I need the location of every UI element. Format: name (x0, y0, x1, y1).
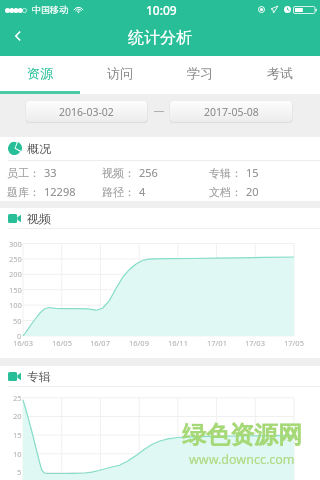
button[interactable]: Back (0, 20, 36, 56)
staticText: 2017-05-08 (204, 105, 259, 119)
button[interactable]: 访问 (80, 56, 160, 94)
button[interactable]: 2017-05-08 (170, 101, 292, 122)
staticText: 20 (246, 184, 259, 199)
staticText: 资源 (27, 65, 53, 81)
staticText: 4 (139, 184, 146, 199)
staticText: 路径： (102, 185, 135, 199)
staticText: www.downcc.com (189, 451, 295, 468)
staticText: 16/05 (52, 338, 72, 348)
staticText: 100 (9, 300, 22, 310)
staticText: 16/11 (168, 338, 188, 348)
staticText: 200 (9, 269, 22, 279)
staticText: 15 (246, 165, 259, 180)
staticText: 256 (139, 165, 158, 180)
staticText: 员工： (7, 166, 40, 180)
staticText: 15 (13, 430, 22, 440)
staticText: 5 (17, 467, 22, 477)
staticText: 17/01 (207, 338, 227, 348)
staticText: 绿色资源网 (182, 420, 302, 450)
staticText: 25 (13, 393, 22, 403)
staticText: 17/05 (284, 338, 304, 348)
staticText: 题库： (7, 185, 40, 199)
button[interactable]: 考试 (240, 56, 320, 94)
staticText: 专辑 (27, 369, 51, 384)
staticText: 中国移动 (32, 4, 68, 15)
staticText: 150 (9, 285, 22, 295)
staticText: 访问 (107, 65, 133, 81)
staticText: 视频 (27, 211, 51, 226)
staticText: 16/07 (90, 338, 110, 348)
staticText: 12298 (44, 184, 76, 199)
staticText: 2016-03-02 (59, 105, 114, 119)
staticText: 17/03 (245, 338, 265, 348)
staticText: 250 (9, 254, 22, 264)
button[interactable]: 资源 (0, 56, 80, 94)
staticText: 专辑： (209, 166, 242, 180)
staticText: 概况 (27, 141, 51, 156)
staticText: 20 (13, 411, 22, 421)
staticText: 10:09 (146, 2, 177, 18)
staticText: 统计分析 (128, 28, 192, 48)
staticText: 33 (44, 165, 57, 180)
staticText: 0 (17, 331, 22, 341)
staticText: 视频： (102, 166, 135, 180)
staticText: 16/09 (129, 338, 149, 348)
button[interactable]: 2016-03-02 (26, 101, 147, 122)
staticText: 300 (9, 239, 22, 249)
staticText: 10 (13, 449, 22, 459)
staticText: 学习 (187, 65, 213, 81)
button[interactable]: 学习 (160, 56, 240, 94)
staticText: 16/03 (13, 338, 33, 348)
staticText: 50 (13, 316, 22, 326)
staticText: 文档： (209, 185, 242, 199)
staticText: 考试 (267, 65, 293, 81)
